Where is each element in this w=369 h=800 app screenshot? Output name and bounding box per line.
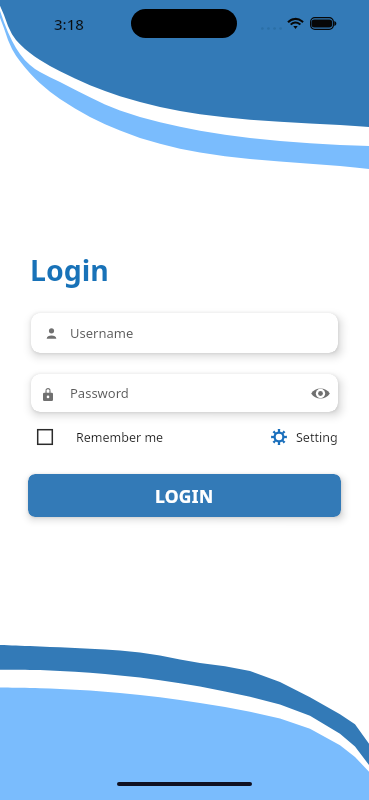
button[interactable]: Show password — [302, 374, 338, 412]
button[interactable]: Setting — [271, 424, 338, 450]
staticText: Setting — [296, 429, 338, 446]
button[interactable]: LOGIN — [28, 474, 341, 517]
button[interactable]: Username — [31, 313, 338, 353]
button[interactable]: Remember me — [31, 424, 164, 450]
staticText: Password — [70, 384, 129, 402]
staticText: LOGIN — [155, 484, 214, 508]
staticText: 3:18 — [54, 14, 84, 34]
staticText: Username — [70, 324, 134, 342]
staticText: Remember me — [76, 429, 164, 446]
staticText: Login — [30, 251, 109, 290]
button[interactable]: Password — [31, 374, 338, 412]
